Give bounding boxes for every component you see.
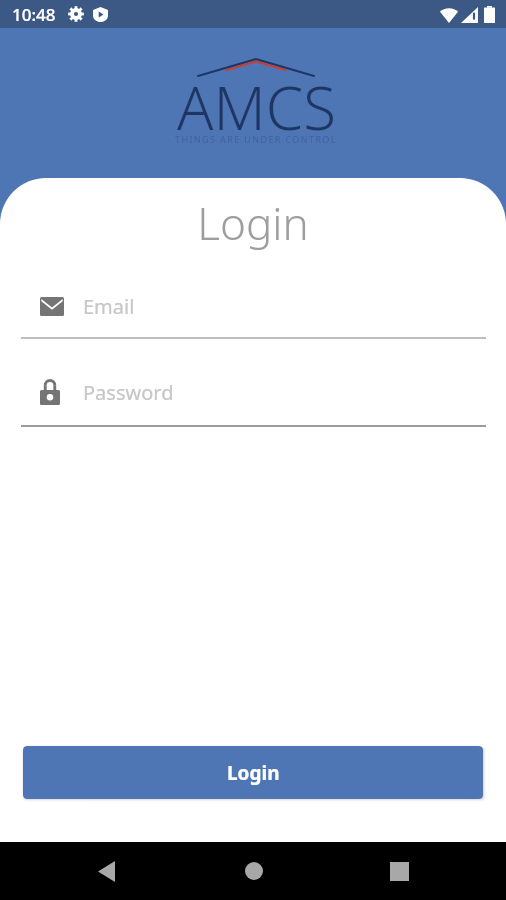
staticText: Email <box>83 293 135 319</box>
staticText: 10:48 <box>12 3 56 26</box>
button[interactable]: Recent apps <box>371 843 427 899</box>
staticText: Password <box>83 379 174 405</box>
staticText: AMCS <box>177 66 336 148</box>
button[interactable]: Home <box>226 843 282 899</box>
staticText: Login <box>227 760 280 786</box>
button[interactable]: Back <box>78 843 134 899</box>
button[interactable]: Login <box>23 746 483 799</box>
staticText: Login <box>0 193 506 253</box>
staticText: THINGS ARE UNDER CONTROL <box>175 133 337 145</box>
